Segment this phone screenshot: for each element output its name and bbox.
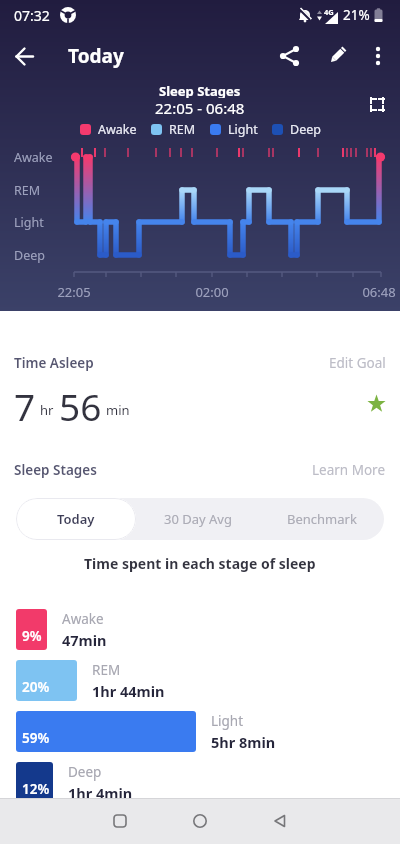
staticText: Sleep Stages bbox=[159, 82, 241, 98]
button[interactable] bbox=[325, 44, 349, 68]
staticText: REM bbox=[92, 661, 121, 679]
button[interactable] bbox=[273, 814, 287, 828]
staticText: 7 bbox=[14, 381, 36, 425]
button[interactable]: Today bbox=[16, 498, 136, 540]
staticText: Light bbox=[228, 121, 258, 138]
staticText: Awake bbox=[62, 610, 104, 628]
button[interactable] bbox=[371, 98, 384, 111]
staticText: Today bbox=[57, 510, 95, 528]
staticText: 1hr 4min bbox=[68, 783, 133, 803]
staticText: Deep bbox=[68, 763, 102, 781]
button[interactable]: Edit Goal bbox=[329, 354, 386, 372]
button[interactable]: Benchmark bbox=[260, 498, 384, 540]
staticText: Learn More bbox=[312, 461, 386, 479]
staticText: 4G bbox=[324, 7, 334, 17]
staticText: 22:05 - 06:48 bbox=[155, 98, 245, 118]
staticText: 47min bbox=[62, 630, 107, 650]
staticText: 30 Day Avg bbox=[164, 510, 232, 528]
staticText: 1hr 44min bbox=[92, 681, 165, 701]
staticText: Awake bbox=[98, 121, 137, 138]
staticText: Today bbox=[68, 43, 124, 69]
staticText: Awake bbox=[14, 149, 53, 166]
button[interactable]: Learn More bbox=[312, 461, 386, 479]
button[interactable] bbox=[278, 44, 302, 68]
staticText: 20% bbox=[22, 678, 50, 696]
staticText: Sleep Stages bbox=[14, 461, 97, 479]
staticText: Benchmark bbox=[287, 510, 357, 528]
button[interactable] bbox=[0, 30, 48, 82]
staticText: 59% bbox=[22, 729, 50, 747]
staticText: 06:48 bbox=[357, 283, 400, 301]
button[interactable] bbox=[368, 30, 388, 82]
staticText: 12% bbox=[22, 780, 50, 798]
staticText: Deep bbox=[14, 247, 45, 264]
staticText: Light bbox=[211, 712, 244, 730]
staticText: min bbox=[106, 401, 130, 419]
staticText: 56 bbox=[59, 381, 102, 425]
staticText: REM bbox=[14, 182, 41, 199]
staticText: 02:00 bbox=[190, 283, 234, 301]
staticText: Edit Goal bbox=[329, 354, 386, 372]
staticText: Light bbox=[14, 214, 44, 231]
staticText: 9% bbox=[22, 627, 42, 645]
staticText: 5hr 8min bbox=[211, 732, 276, 752]
staticText: 21% bbox=[343, 6, 370, 24]
button[interactable] bbox=[113, 814, 127, 828]
staticText: 22:05 bbox=[52, 283, 96, 301]
staticText: Time spent in each stage of sleep bbox=[84, 554, 316, 572]
staticText: REM bbox=[169, 121, 196, 138]
button[interactable]: 30 Day Avg bbox=[136, 498, 260, 540]
staticText: Deep bbox=[290, 121, 321, 138]
staticText: 07:32 bbox=[14, 6, 50, 25]
staticText: hr bbox=[40, 401, 54, 419]
button[interactable] bbox=[193, 814, 207, 828]
staticText: Time Asleep bbox=[14, 354, 94, 372]
